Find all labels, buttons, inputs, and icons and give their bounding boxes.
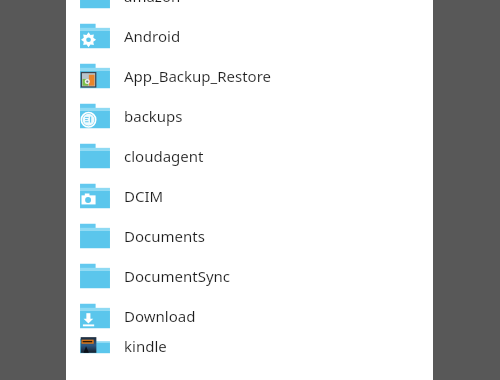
staticText: cloudagent — [124, 146, 204, 166]
button[interactable]: kindle — [66, 336, 433, 356]
button[interactable]: Download — [66, 296, 433, 336]
staticText: DocumentSync — [124, 266, 231, 286]
staticText: Download — [124, 306, 196, 326]
button[interactable]: Documents — [66, 216, 433, 256]
button[interactable]: Android — [66, 16, 433, 56]
button[interactable]: amazon — [66, 0, 433, 16]
button[interactable]: cloudagent — [66, 136, 433, 176]
staticText: DCIM — [124, 186, 164, 206]
staticText: kindle — [124, 336, 167, 356]
button[interactable]: DCIM — [66, 176, 433, 216]
staticText: Android — [124, 26, 181, 46]
staticText: App_Backup_Restore — [124, 66, 272, 86]
staticText: backups — [124, 106, 183, 126]
button[interactable]: DocumentSync — [66, 256, 433, 296]
staticText: Documents — [124, 226, 205, 246]
button[interactable]: App_Backup_Restore — [66, 56, 433, 96]
button[interactable]: backups — [66, 96, 433, 136]
staticText: amazon — [124, 0, 181, 6]
